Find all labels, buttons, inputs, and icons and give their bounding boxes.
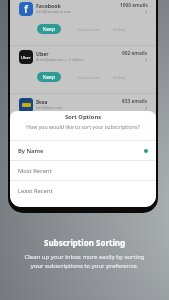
button[interactable]: Most Recent (10, 161, 156, 180)
staticText: By Name (18, 147, 44, 155)
button[interactable]: Keep (37, 120, 61, 130)
button[interactable]: Ikea (10, 94, 156, 142)
staticText: Subscription Sorting (44, 237, 126, 248)
button[interactable]: By Name (10, 141, 156, 160)
button[interactable]: Keep (37, 72, 61, 82)
staticText: Uber (36, 50, 49, 57)
staticText: Keep (43, 26, 56, 33)
button[interactable]: Least Recent (10, 181, 156, 200)
button[interactable]: Unsubscribe (77, 123, 101, 128)
staticText: Facebook (36, 2, 61, 9)
button[interactable]: Rollup (113, 27, 125, 32)
button[interactable]: Unsubscribe (77, 75, 101, 80)
staticText: Most Recent (18, 167, 52, 175)
button[interactable]: Keep (37, 24, 61, 34)
staticText: Clean up your inbox more easily by sorti… (24, 253, 145, 270)
staticText: Keep (43, 122, 56, 129)
staticText: Ikea (36, 98, 48, 105)
button[interactable]: Rollup (113, 75, 125, 80)
staticText: f (24, 2, 28, 16)
staticText: drive@uber.com + 5 others (36, 57, 84, 62)
button[interactable]: Unsubscribe (77, 27, 101, 32)
staticText: 1000 emails (120, 2, 148, 9)
staticText: Least Recent (18, 187, 53, 195)
staticText: info@ikea.com (36, 105, 63, 110)
staticText: 902 emails (122, 50, 148, 57)
staticText: 833 emails (122, 98, 148, 105)
staticText: Uber (21, 55, 31, 60)
button[interactable]: f (10, 0, 156, 46)
staticText: info@facebook.com (36, 9, 72, 14)
staticText: How you would like to sort your subscrip… (10, 123, 156, 130)
staticText: Keep (43, 74, 56, 81)
staticText: Sort Options (10, 113, 156, 121)
button[interactable]: Uber (10, 46, 156, 94)
button[interactable]: Rollup (113, 123, 125, 128)
